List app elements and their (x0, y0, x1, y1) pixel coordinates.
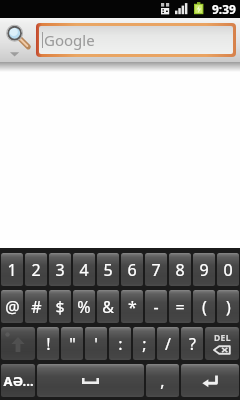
staticText: ' (94, 333, 98, 355)
button[interactable]: , (146, 364, 179, 397)
staticText: 7 (151, 259, 161, 281)
staticText: 4 (79, 259, 89, 281)
staticText: 8 (175, 259, 185, 281)
staticText: Google (44, 30, 95, 50)
button[interactable]: ; (133, 327, 155, 360)
staticText: 9 (199, 259, 209, 281)
staticText: ! (46, 333, 51, 355)
button[interactable]: Select search source (0, 18, 36, 62)
staticText: ; (142, 333, 147, 355)
staticText: * (128, 296, 137, 318)
staticText: / (165, 333, 171, 355)
button[interactable]: 7 (145, 253, 167, 286)
button[interactable]: Shift (1, 327, 35, 360)
button[interactable]: ( (193, 290, 215, 323)
staticText: 3 (55, 259, 65, 281)
button[interactable]: : (109, 327, 131, 360)
staticText: 9:39 (212, 1, 236, 17)
staticText: 2 (31, 259, 41, 281)
button[interactable]: 6 (121, 253, 143, 286)
staticText: , (160, 370, 165, 392)
button[interactable]: 5 (97, 253, 119, 286)
staticText: # (31, 296, 42, 318)
staticText: " (69, 333, 76, 355)
button[interactable]: 8 (169, 253, 191, 286)
button[interactable]: ) (217, 290, 239, 323)
button[interactable]: % (73, 290, 95, 323)
button[interactable]: Space (37, 364, 144, 397)
button[interactable]: 2 (25, 253, 47, 286)
button[interactable]: " (61, 327, 83, 360)
staticText: 6 (127, 259, 137, 281)
button[interactable]: - (145, 290, 167, 323)
button[interactable]: * (121, 290, 143, 323)
staticText: DEL (214, 332, 231, 344)
staticText: $ (55, 296, 65, 318)
staticText: ? (189, 333, 196, 355)
staticText: 1 (7, 259, 17, 281)
button[interactable]: Delete (205, 327, 239, 360)
button[interactable]: & (97, 290, 119, 323)
button[interactable]: Google (36, 23, 236, 57)
button[interactable]: AӘ... (1, 364, 35, 397)
button[interactable]: 4 (73, 253, 95, 286)
button[interactable]: 3 (49, 253, 71, 286)
button[interactable]: / (157, 327, 179, 360)
staticText: & (102, 296, 114, 318)
button[interactable]: ! (37, 327, 59, 360)
staticText: : (118, 333, 123, 355)
staticText: = (175, 296, 185, 318)
button[interactable]: Enter (181, 364, 239, 397)
button[interactable]: # (25, 290, 47, 323)
button[interactable]: ' (85, 327, 107, 360)
staticText: % (77, 296, 91, 318)
staticText: 5 (103, 259, 113, 281)
staticText: ) (226, 296, 231, 318)
staticText: AӘ... (3, 372, 34, 390)
staticText: 0 (223, 259, 233, 281)
button[interactable]: = (169, 290, 191, 323)
button[interactable]: @ (1, 290, 23, 323)
staticText: - (153, 296, 159, 318)
button[interactable]: 0 (217, 253, 239, 286)
button[interactable]: ? (181, 327, 203, 360)
button[interactable]: $ (49, 290, 71, 323)
staticText: ( (202, 296, 207, 318)
button[interactable]: 1 (1, 253, 23, 286)
staticText: @ (5, 296, 20, 318)
button[interactable]: 9 (193, 253, 215, 286)
